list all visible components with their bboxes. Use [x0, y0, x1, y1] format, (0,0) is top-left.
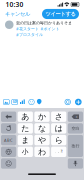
staticText: ツイートする [45, 11, 75, 17]
button[interactable]: Redo [1, 123, 16, 134]
staticText: さ [55, 112, 63, 122]
staticText: ら [55, 135, 63, 145]
staticText: あ [21, 112, 29, 122]
staticText: × [75, 114, 77, 119]
button[interactable]: Add location [36, 99, 43, 105]
staticText: か [38, 112, 46, 122]
button[interactable]: Add photo [3, 99, 10, 105]
button[interactable]: Undo [1, 111, 16, 122]
staticText: ABC [4, 137, 13, 143]
staticText: た [21, 123, 29, 133]
staticText: わ [38, 147, 46, 157]
button[interactable]: あ [18, 111, 33, 122]
staticText: な [38, 123, 46, 133]
button[interactable]: や [34, 135, 50, 145]
button[interactable]: は [51, 123, 66, 134]
button[interactable]: さ [51, 111, 66, 122]
staticText: #花スタート [16, 26, 39, 31]
button[interactable]: Emoji [28, 99, 35, 105]
button[interactable]: 空白 [68, 123, 83, 134]
button[interactable]: ABC [1, 135, 16, 145]
staticText: 小 [22, 148, 29, 156]
button[interactable]: ま [18, 135, 33, 145]
button[interactable]: Add GIF [11, 99, 18, 105]
staticText: 改行 [71, 143, 79, 148]
staticText: キャンセル [5, 11, 30, 17]
button[interactable]: た [18, 123, 33, 134]
button[interactable]: キャンセル [5, 9, 30, 19]
button[interactable]: 、。?! [51, 147, 66, 157]
button[interactable]: わ [34, 147, 50, 157]
staticText: 息の日は案の毎日かりありそま [16, 20, 72, 25]
button[interactable]: 小 [18, 147, 33, 157]
button[interactable]: ら [51, 135, 66, 145]
staticText: GIF [13, 100, 17, 104]
staticText: は [55, 123, 63, 133]
button[interactable]: Emoji [1, 158, 16, 169]
staticText: 、。?! [55, 150, 63, 154]
button[interactable]: Dictation [68, 158, 83, 169]
button[interactable]: Delete [68, 111, 83, 122]
button[interactable]: Character count [64, 98, 71, 105]
button[interactable]: か [34, 111, 50, 122]
staticText: ま [21, 135, 29, 145]
staticText: #ポイント [40, 26, 59, 31]
staticText: や [38, 135, 46, 145]
button[interactable]: な [34, 123, 50, 134]
button[interactable]: 改行 [68, 135, 83, 157]
button[interactable]: Add poll [20, 99, 27, 105]
staticText: 10:30 [5, 0, 23, 9]
button[interactable]: ツイートする [42, 9, 79, 19]
button[interactable]: Next keyboard [1, 147, 16, 157]
button[interactable]: Add another tweet [75, 98, 82, 105]
staticText: #プロスタイル [16, 32, 43, 37]
staticText: 空白 [71, 126, 79, 131]
